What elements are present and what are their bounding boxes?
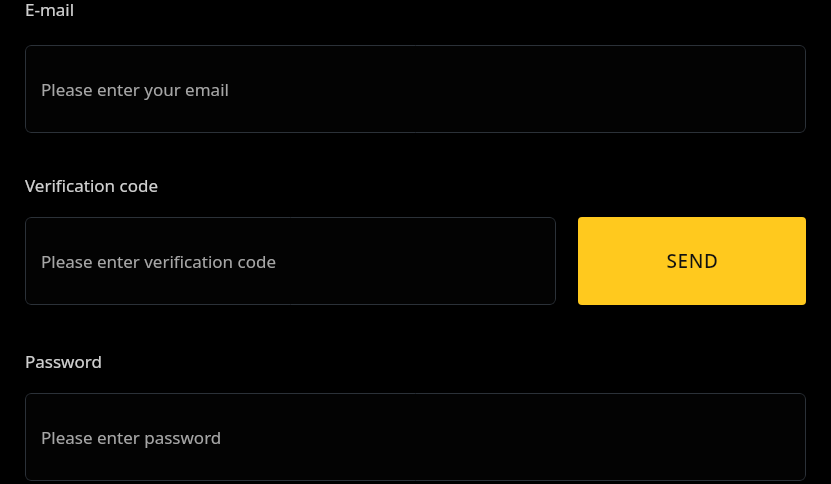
staticText: Please enter verification code bbox=[41, 250, 276, 273]
button[interactable]: Please enter your email bbox=[25, 45, 806, 133]
staticText: Please enter your email bbox=[41, 78, 229, 101]
staticText: E-mail bbox=[25, 0, 75, 21]
button[interactable]: SEND bbox=[578, 217, 806, 305]
staticText: Please enter password bbox=[41, 426, 222, 449]
button[interactable]: Please enter verification code bbox=[25, 217, 556, 305]
button[interactable]: Please enter password bbox=[25, 393, 806, 481]
staticText: SEND bbox=[666, 248, 719, 274]
staticText: Verification code bbox=[25, 174, 159, 197]
staticText: Password bbox=[25, 350, 102, 373]
